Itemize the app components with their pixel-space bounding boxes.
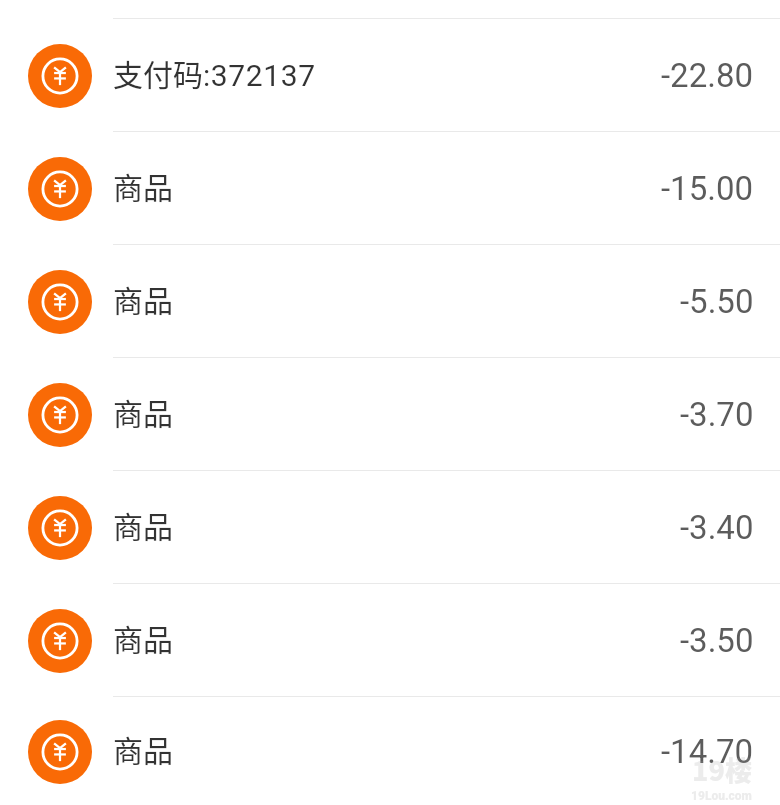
staticText: -22.80	[661, 56, 754, 95]
button[interactable]: 商品	[0, 696, 780, 805]
staticText: 19楼	[692, 750, 752, 789]
button[interactable]: 支付码:372137	[0, 18, 780, 131]
other: Payment	[28, 609, 92, 673]
button[interactable]: 商品	[0, 244, 780, 357]
other: Payment	[28, 383, 92, 447]
button[interactable]: 商品	[0, 583, 780, 696]
staticText: -14.70	[661, 732, 754, 771]
staticText: -3.40	[680, 508, 754, 547]
staticText: -3.50	[680, 621, 754, 660]
staticText: 支付码:372137	[113, 51, 316, 94]
staticText: 商品	[113, 164, 173, 207]
other: Payment	[28, 44, 92, 108]
staticText: -3.70	[680, 395, 754, 434]
staticText: 商品	[113, 503, 173, 546]
staticText: 商品	[113, 616, 173, 659]
staticText: 19Lou.com	[691, 789, 752, 803]
other: Payment	[28, 496, 92, 560]
staticText: -5.50	[680, 282, 754, 321]
other: Payment	[28, 720, 92, 784]
other: Payment	[28, 270, 92, 334]
staticText: 商品	[113, 277, 173, 320]
button[interactable]: 商品	[0, 357, 780, 470]
other: Payment	[28, 157, 92, 221]
staticText: 商品	[113, 390, 173, 433]
button[interactable]: 商品	[0, 131, 780, 244]
button[interactable]: 商品	[0, 470, 780, 583]
staticText: -15.00	[661, 169, 754, 208]
staticText: 商品	[113, 727, 173, 770]
